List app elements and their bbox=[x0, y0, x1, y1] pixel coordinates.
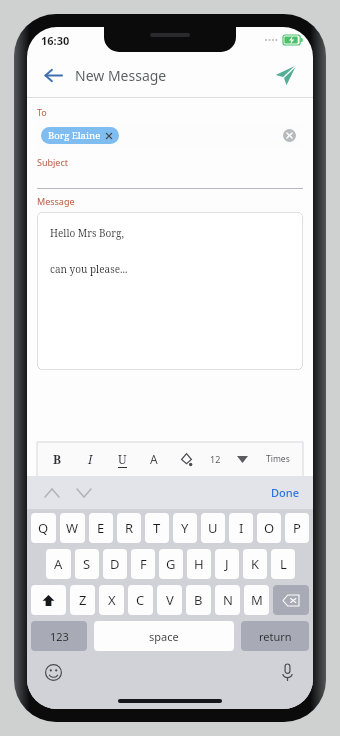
button[interactable]: G bbox=[159, 549, 183, 579]
button[interactable]: Borg Elaine bbox=[48, 129, 112, 142]
staticText: D bbox=[110, 555, 120, 573]
staticText: A bbox=[150, 451, 158, 467]
button[interactable]: X bbox=[99, 585, 124, 615]
button[interactable]: W bbox=[60, 513, 85, 543]
button[interactable]: V bbox=[157, 585, 182, 615]
button[interactable]: Send bbox=[269, 58, 303, 92]
button[interactable]: Clear recipients bbox=[280, 126, 298, 144]
button[interactable]: M bbox=[244, 585, 269, 615]
button[interactable]: R bbox=[117, 513, 141, 543]
button[interactable]: D bbox=[103, 549, 127, 579]
staticText: P bbox=[293, 519, 301, 537]
staticText: M bbox=[251, 591, 263, 609]
button[interactable]: L bbox=[271, 549, 295, 579]
staticText: I bbox=[88, 451, 93, 467]
staticText: C bbox=[136, 591, 145, 609]
button[interactable]: Back bbox=[35, 57, 71, 93]
button[interactable]: U bbox=[106, 442, 138, 476]
button[interactable]: A bbox=[46, 549, 71, 579]
staticText: Message bbox=[37, 195, 75, 207]
button[interactable]: Done bbox=[267, 481, 303, 504]
button[interactable]: T bbox=[145, 513, 169, 543]
staticText: H bbox=[194, 555, 204, 573]
staticText: W bbox=[66, 519, 79, 537]
button[interactable]: Shift bbox=[31, 585, 66, 615]
staticText: 16:30 bbox=[41, 33, 70, 48]
staticText: S bbox=[83, 555, 91, 573]
button[interactable]: 123 bbox=[31, 621, 87, 651]
button[interactable]: E bbox=[89, 513, 113, 543]
button[interactable]: P bbox=[285, 513, 309, 543]
button[interactable]: Z bbox=[70, 585, 95, 615]
button[interactable]: Next field bbox=[71, 480, 97, 506]
button[interactable]: Y bbox=[173, 513, 197, 543]
staticText: E bbox=[97, 519, 105, 537]
button[interactable]: Hello Mrs Borg, bbox=[37, 212, 303, 370]
button[interactable]: S bbox=[75, 549, 99, 579]
button[interactable]: Backspace bbox=[273, 585, 309, 615]
staticText: To bbox=[37, 106, 47, 118]
staticText: N bbox=[223, 591, 233, 609]
button[interactable]: return bbox=[241, 621, 309, 651]
button[interactable]: F bbox=[131, 549, 155, 579]
button[interactable]: O bbox=[257, 513, 281, 543]
staticText: I bbox=[239, 519, 244, 537]
button[interactable]: Text highlight color bbox=[170, 442, 202, 476]
button[interactable]: Font size menu bbox=[228, 442, 257, 476]
button[interactable]: J bbox=[215, 549, 239, 579]
button[interactable]: H bbox=[187, 549, 211, 579]
button[interactable]: Emoji bbox=[39, 658, 67, 686]
staticText: Q bbox=[38, 519, 49, 537]
button[interactable]: Dictate bbox=[273, 658, 301, 686]
staticText: Hello Mrs Borg, bbox=[50, 226, 124, 240]
staticText: L bbox=[280, 555, 287, 573]
staticText: R bbox=[125, 519, 134, 537]
button[interactable]: U bbox=[201, 513, 225, 543]
button[interactable]: B bbox=[41, 442, 74, 476]
staticText: Z bbox=[79, 591, 87, 609]
button[interactable]: I bbox=[229, 513, 253, 543]
staticText: K bbox=[251, 555, 260, 573]
staticText: can you please... bbox=[50, 262, 128, 276]
staticText: V bbox=[166, 591, 174, 609]
staticText: New Message bbox=[75, 66, 167, 85]
staticText: B bbox=[53, 451, 62, 467]
staticText: Done bbox=[271, 485, 299, 500]
button[interactable]: 12 bbox=[202, 442, 228, 476]
staticText: X bbox=[108, 591, 116, 609]
button[interactable]: space bbox=[94, 621, 234, 651]
staticText: Subject bbox=[37, 156, 69, 168]
staticText: Times bbox=[266, 453, 290, 465]
staticText: F bbox=[140, 555, 147, 573]
staticText: return bbox=[259, 629, 292, 644]
button[interactable]: Previous field bbox=[39, 480, 65, 506]
staticText: J bbox=[225, 555, 229, 573]
staticText: U bbox=[118, 451, 127, 467]
button[interactable]: N bbox=[215, 585, 240, 615]
button[interactable]: Times bbox=[257, 442, 299, 476]
staticText: B bbox=[194, 591, 203, 609]
button[interactable]: K bbox=[243, 549, 267, 579]
staticText: 123 bbox=[50, 629, 69, 644]
staticText: A bbox=[54, 555, 63, 573]
staticText: Borg Elaine bbox=[48, 129, 101, 142]
button[interactable]: A bbox=[138, 442, 170, 476]
button[interactable]: Borg Elaine bbox=[37, 122, 303, 148]
button[interactable]: Q bbox=[31, 513, 56, 543]
staticText: T bbox=[153, 519, 161, 537]
staticText: Y bbox=[181, 519, 189, 537]
staticText: space bbox=[149, 629, 179, 644]
button[interactable]: B bbox=[186, 585, 211, 615]
button[interactable]: C bbox=[128, 585, 153, 615]
staticText: 12 bbox=[210, 453, 221, 465]
staticText: G bbox=[166, 555, 176, 573]
button[interactable]: I bbox=[74, 442, 106, 476]
staticText: O bbox=[264, 519, 275, 537]
staticText: U bbox=[208, 519, 218, 537]
